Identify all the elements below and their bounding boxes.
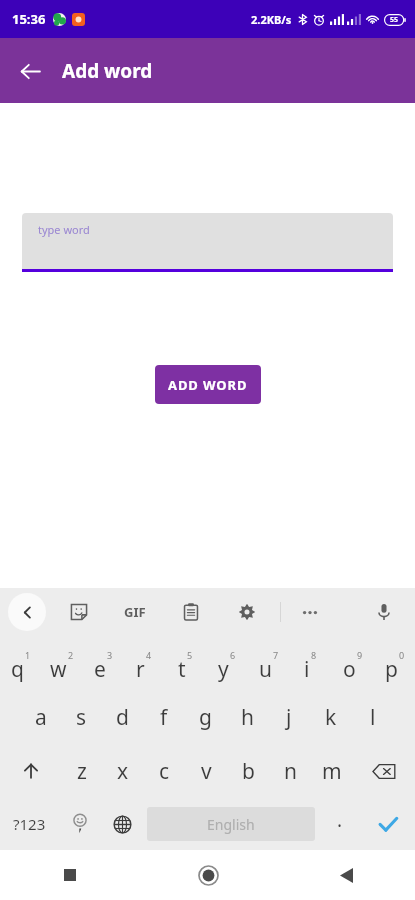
button[interactable]: . [319, 798, 361, 850]
button[interactable]: j [268, 690, 310, 744]
staticText: 55 [390, 15, 399, 25]
button[interactable]: ADD WORD [155, 365, 261, 404]
staticText: m [322, 757, 342, 786]
staticText: g [199, 703, 212, 732]
button[interactable]: p [373, 636, 415, 690]
staticText: 7 [273, 649, 279, 661]
staticText: b [242, 757, 255, 786]
staticText: j [286, 703, 292, 732]
staticText: English [207, 815, 255, 834]
button[interactable]: k [310, 690, 352, 744]
staticText: 1 [25, 649, 31, 661]
button[interactable]: Recents [0, 850, 139, 900]
staticText: GIF [124, 603, 146, 621]
button[interactable]: t [164, 636, 205, 690]
button[interactable]: x [102, 744, 143, 798]
button[interactable]: l [352, 690, 394, 744]
button[interactable]: Back [8, 49, 52, 93]
button[interactable]: Voice input [367, 595, 401, 629]
button[interactable]: a [20, 690, 61, 744]
staticText: i [304, 655, 310, 684]
button[interactable]: i [289, 636, 331, 690]
button[interactable]: c [143, 744, 185, 798]
staticText: 6 [230, 649, 236, 661]
staticText: n [284, 757, 297, 786]
button[interactable]: Clipboard [174, 595, 208, 629]
button[interactable]: u [247, 636, 289, 690]
button[interactable]: f [143, 690, 184, 744]
staticText: s [76, 703, 87, 732]
staticText: 8 [311, 649, 317, 661]
staticText: v [201, 757, 212, 786]
staticText: a [35, 703, 47, 732]
button[interactable]: Backspace [353, 744, 415, 798]
button[interactable]: d [102, 690, 143, 744]
button[interactable]: type word [22, 213, 393, 272]
button[interactable]: n [269, 744, 311, 798]
button[interactable]: w [41, 636, 82, 690]
button[interactable]: Settings [230, 595, 264, 629]
staticText: 2 [68, 649, 74, 661]
staticText: t [178, 655, 186, 684]
button[interactable]: Back [277, 850, 415, 900]
button[interactable]: Done [361, 798, 415, 850]
staticText: z [77, 757, 87, 786]
button[interactable]: m [311, 744, 353, 798]
button[interactable]: o [331, 636, 373, 690]
button[interactable]: Change language [101, 798, 143, 850]
staticText: . [337, 807, 343, 833]
button[interactable]: Back [8, 593, 46, 631]
button[interactable]: z [61, 744, 102, 798]
staticText: f [160, 703, 168, 732]
staticText: 4 [146, 649, 152, 661]
staticText: x [117, 757, 129, 786]
button[interactable]: y [205, 636, 247, 690]
staticText: ADD WORD [168, 376, 248, 394]
staticText: Add word [62, 58, 153, 84]
staticText: k [325, 703, 337, 732]
button[interactable]: r [123, 636, 164, 690]
button[interactable]: e [82, 636, 123, 690]
staticText: u [259, 655, 272, 684]
staticText: 3 [107, 649, 113, 661]
button[interactable]: h [226, 690, 268, 744]
staticText: c [159, 757, 170, 786]
staticText: r [136, 655, 145, 684]
button[interactable]: Shift [0, 744, 61, 798]
staticText: 2.2KB/s [251, 12, 292, 27]
button[interactable]: s [61, 690, 102, 744]
button[interactable]: GIF [118, 595, 152, 629]
button[interactable]: Emoji [59, 798, 101, 850]
staticText: 0 [399, 649, 405, 661]
button[interactable]: ?123 [0, 798, 59, 850]
button[interactable]: English [147, 807, 315, 841]
staticText: l [370, 703, 376, 732]
staticText: p [385, 655, 398, 684]
staticText: 15:36 [12, 10, 46, 28]
staticText: type word [38, 222, 90, 237]
button[interactable]: b [227, 744, 269, 798]
staticText: w [50, 655, 67, 684]
button[interactable]: Home [139, 850, 277, 900]
staticText: q [11, 655, 24, 684]
staticText: y [218, 655, 229, 684]
staticText: e [94, 655, 106, 684]
button[interactable]: Stickers [62, 595, 96, 629]
staticText: 9 [357, 649, 363, 661]
button[interactable]: g [184, 690, 226, 744]
staticText: d [116, 703, 129, 732]
staticText: 5 [187, 649, 193, 661]
button[interactable]: More options [293, 595, 327, 629]
staticText: o [343, 655, 356, 684]
button[interactable]: v [185, 744, 227, 798]
staticText: h [241, 703, 254, 732]
button[interactable]: q [0, 636, 41, 690]
staticText: ?123 [13, 814, 46, 834]
